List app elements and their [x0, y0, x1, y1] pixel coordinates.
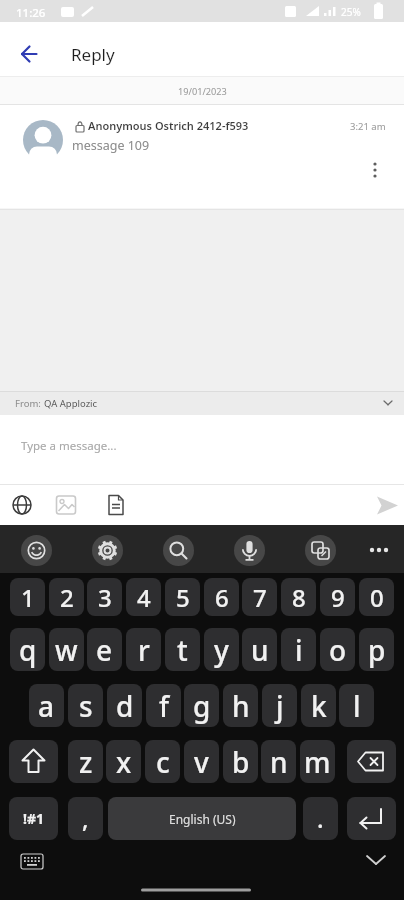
button[interactable]: English (US)	[108, 797, 296, 840]
staticText: g	[193, 687, 211, 725]
staticText: h	[232, 687, 250, 725]
staticText: m	[304, 743, 331, 781]
staticText: k	[311, 687, 327, 725]
button[interactable]	[364, 535, 394, 565]
button[interactable]: m	[300, 740, 335, 783]
button[interactable]: l	[339, 684, 374, 727]
button[interactable]	[347, 797, 396, 840]
staticText: x	[116, 743, 132, 781]
button[interactable]	[92, 535, 123, 566]
button[interactable]: x	[106, 740, 141, 783]
staticText: i	[295, 631, 303, 669]
staticText: ,	[82, 802, 89, 835]
button[interactable]: k	[301, 684, 336, 727]
button[interactable]: a	[29, 684, 64, 727]
button[interactable]: From:	[0, 391, 404, 415]
button[interactable]: Anonymous Ostrich 2412-f593	[0, 105, 404, 210]
button[interactable]: ,	[68, 797, 103, 840]
button[interactable]: c	[145, 740, 180, 783]
button[interactable]: o	[320, 628, 355, 671]
button[interactable]: 3	[87, 578, 122, 616]
button[interactable]	[305, 535, 336, 566]
staticText: 3	[98, 581, 112, 614]
button[interactable]: 0	[359, 578, 394, 616]
button[interactable]: u	[242, 628, 277, 671]
button[interactable]: 5	[165, 578, 200, 616]
button[interactable]	[356, 842, 396, 878]
staticText: c	[156, 743, 170, 781]
button[interactable]	[372, 491, 402, 521]
button[interactable]	[102, 491, 130, 519]
button[interactable]: q	[10, 628, 45, 671]
staticText: Reply	[71, 43, 115, 66]
staticText: 6	[215, 581, 229, 614]
button[interactable]: 2	[49, 578, 84, 616]
staticText: f	[159, 687, 169, 725]
staticText: n	[270, 743, 288, 781]
staticText: 9	[331, 581, 345, 614]
staticText: QA Applozic	[44, 397, 98, 410]
staticText: .	[317, 802, 324, 835]
staticText: s	[79, 687, 93, 725]
button[interactable]: 9	[320, 578, 355, 616]
button[interactable]: !#1	[9, 797, 58, 840]
button[interactable]: Type a message...	[0, 415, 404, 484]
staticText: q	[19, 631, 37, 669]
button[interactable]: 7	[242, 578, 277, 616]
button[interactable]	[52, 491, 80, 519]
button[interactable]: 4	[126, 578, 161, 616]
button[interactable]: z	[68, 740, 103, 783]
button[interactable]: g	[184, 684, 219, 727]
button[interactable]	[9, 740, 58, 783]
button[interactable]: v	[184, 740, 219, 783]
staticText: 4	[137, 581, 151, 614]
staticText: r	[138, 631, 150, 669]
button[interactable]: d	[107, 684, 142, 727]
button[interactable]	[21, 535, 52, 566]
staticText: English (US)	[169, 811, 236, 827]
staticText: a	[38, 687, 55, 725]
button[interactable]	[12, 844, 52, 880]
button[interactable]: p	[359, 628, 394, 671]
button[interactable]	[163, 535, 194, 566]
button[interactable]: b	[223, 740, 258, 783]
button[interactable]: s	[68, 684, 103, 727]
button[interactable]: n	[261, 740, 296, 783]
button[interactable]: h	[223, 684, 258, 727]
staticText: 5	[176, 581, 190, 614]
button[interactable]	[14, 38, 46, 70]
staticText: 0	[370, 581, 384, 614]
button[interactable]: f	[146, 684, 181, 727]
button[interactable]: .	[303, 797, 338, 840]
staticText: 1	[21, 581, 35, 614]
staticText: 8	[292, 581, 306, 614]
button[interactable]: t	[165, 628, 200, 671]
staticText: 2	[60, 581, 74, 614]
staticText: !#1	[23, 809, 44, 828]
button[interactable]	[234, 535, 265, 566]
staticText: u	[251, 631, 269, 669]
button[interactable]	[360, 155, 390, 185]
button[interactable]: i	[281, 628, 316, 671]
button[interactable]	[347, 740, 396, 783]
staticText: t	[177, 631, 188, 669]
staticText: z	[79, 743, 93, 781]
button[interactable]: 6	[204, 578, 239, 616]
staticText: Anonymous Ostrich 2412-f593	[88, 118, 249, 133]
button[interactable]: 1	[10, 578, 45, 616]
button[interactable]: r	[126, 628, 161, 671]
staticText: Type a message...	[21, 438, 117, 454]
staticText: j	[276, 687, 284, 725]
button[interactable]: w	[49, 628, 84, 671]
staticText: y	[214, 631, 229, 669]
staticText: 19/01/2023	[178, 85, 227, 98]
button[interactable]: y	[204, 628, 239, 671]
staticText: b	[232, 743, 250, 781]
button[interactable]: j	[262, 684, 297, 727]
staticText: message 109	[72, 137, 150, 154]
button[interactable]	[8, 491, 36, 519]
button[interactable]: 8	[281, 578, 316, 616]
staticText: d	[116, 687, 134, 725]
staticText: o	[329, 631, 347, 669]
button[interactable]: e	[87, 628, 122, 671]
